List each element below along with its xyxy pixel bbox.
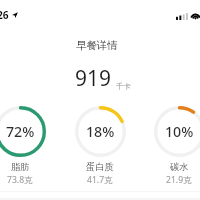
- other: Location active: [12, 12, 18, 18]
- staticText: 26: [0, 8, 9, 22]
- staticText: 41.7克: [87, 174, 113, 186]
- staticText: 72%: [6, 122, 35, 141]
- staticText: 10%: [165, 122, 194, 141]
- staticText: 919: [75, 64, 112, 93]
- staticText: 千卡: [116, 82, 131, 91]
- button[interactable]: 10%: [145, 106, 200, 186]
- staticText: 73.8克: [7, 174, 33, 186]
- staticText: 18%: [86, 122, 115, 141]
- button[interactable]: 18%: [66, 106, 134, 186]
- staticText: 碳水: [170, 161, 189, 173]
- staticText: 脂肪: [11, 161, 30, 173]
- button[interactable]: 72%: [0, 106, 54, 186]
- staticText: 蛋白质: [86, 161, 114, 173]
- staticText: 21.9克: [166, 174, 192, 186]
- staticText: 早餐详情: [76, 39, 118, 52]
